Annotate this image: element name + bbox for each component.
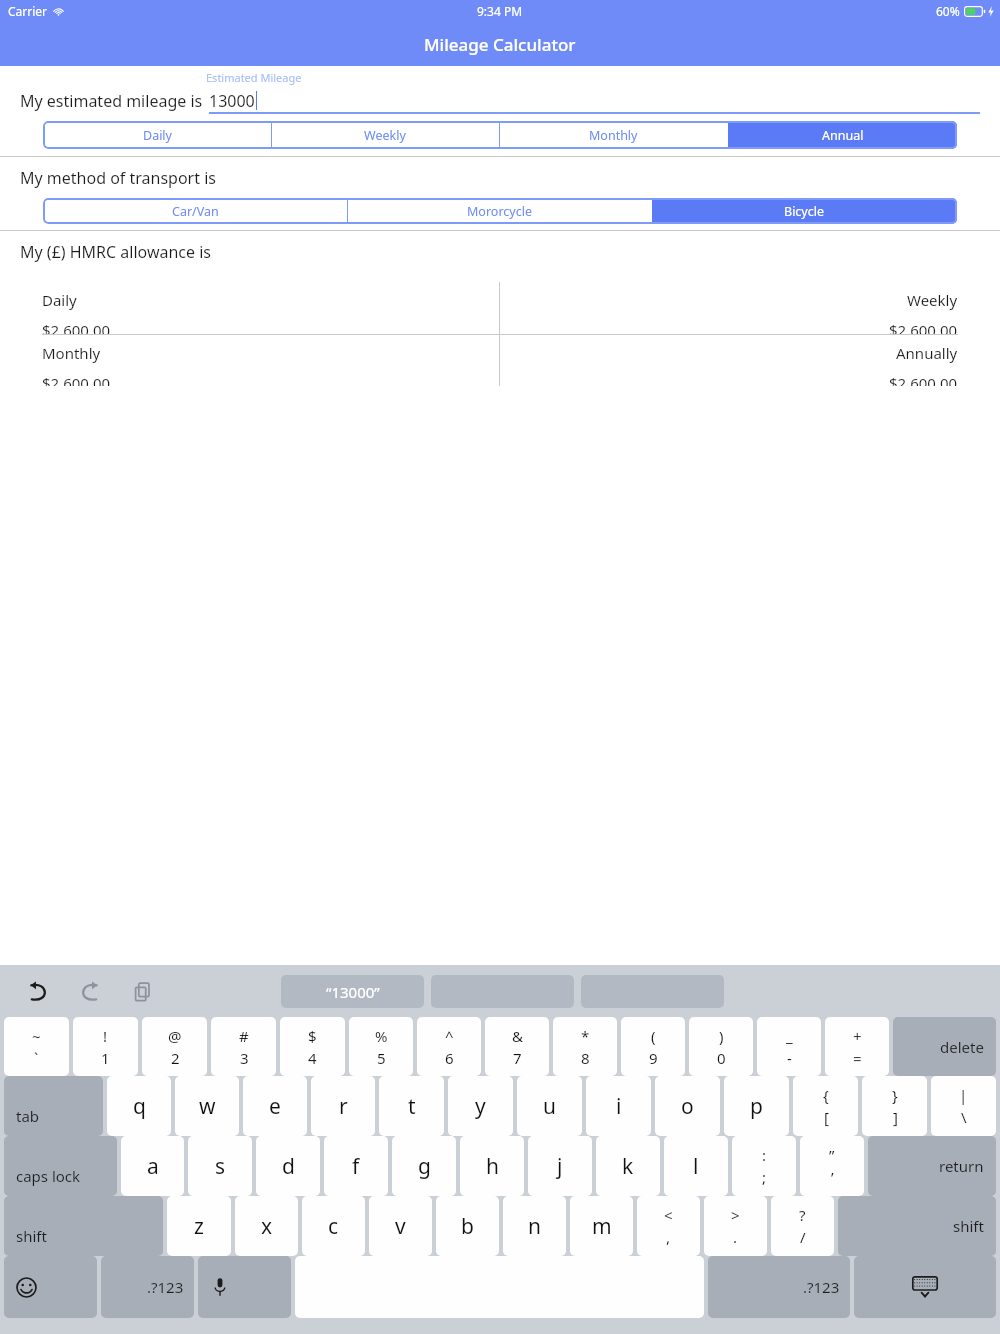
button[interactable]: Annual — [728, 121, 957, 149]
button[interactable]: h — [460, 1136, 524, 1196]
button[interactable]: .?123 — [101, 1256, 194, 1318]
button[interactable]: Monthly — [499, 121, 728, 149]
staticText: tab — [16, 1106, 40, 1126]
staticText: # — [239, 1026, 249, 1046]
button[interactable]: @ — [142, 1017, 207, 1076]
button[interactable]: } — [862, 1076, 927, 1136]
button[interactable]: z — [167, 1196, 231, 1256]
button[interactable]: Undo — [20, 973, 56, 1009]
button[interactable]: : — [732, 1136, 796, 1196]
staticText: shift — [953, 1216, 984, 1236]
staticText: q — [133, 1092, 146, 1121]
button[interactable]: Redo — [72, 973, 108, 1009]
staticText: Weekly — [907, 290, 958, 310]
staticText: 2 — [171, 1048, 180, 1068]
button[interactable]: r — [311, 1076, 375, 1136]
button[interactable]: ” — [800, 1136, 864, 1196]
button[interactable]: Paste — [124, 973, 160, 1009]
button[interactable]: i — [586, 1076, 651, 1136]
button[interactable]: Annually — [500, 335, 1000, 386]
button[interactable]: _ — [757, 1017, 821, 1076]
button[interactable]: m — [570, 1196, 633, 1256]
button[interactable]: f — [324, 1136, 388, 1196]
staticText: $ — [308, 1026, 317, 1046]
button[interactable]: v — [369, 1196, 432, 1256]
staticText: s — [215, 1152, 226, 1181]
button[interactable]: t — [379, 1076, 444, 1136]
button[interactable]: n — [503, 1196, 566, 1256]
button[interactable]: shift — [838, 1196, 996, 1256]
button[interactable]: u — [517, 1076, 582, 1136]
button[interactable]: Monthly — [0, 335, 500, 386]
staticText: \ — [961, 1107, 967, 1127]
button[interactable]: e — [243, 1076, 307, 1136]
button[interactable]: Daily — [43, 121, 271, 149]
button[interactable]: < — [637, 1196, 700, 1256]
staticText: ! — [103, 1026, 108, 1046]
button[interactable]: Mororcycle — [347, 198, 652, 224]
button[interactable]: “13000” — [281, 975, 424, 1008]
staticText: t — [408, 1092, 416, 1121]
button[interactable]: c — [302, 1196, 365, 1256]
button[interactable]: { — [793, 1076, 858, 1136]
button[interactable]: Weekly — [271, 121, 499, 149]
button[interactable]: # — [211, 1017, 276, 1076]
button[interactable]: k — [596, 1136, 660, 1196]
button[interactable]: * — [553, 1017, 617, 1076]
staticText: ^ — [445, 1026, 454, 1046]
staticText: $2,600.00 — [889, 373, 958, 386]
staticText: u — [543, 1092, 556, 1121]
button[interactable]: o — [655, 1076, 720, 1136]
button[interactable]: j — [528, 1136, 592, 1196]
staticText: ` — [34, 1048, 39, 1068]
button[interactable]: Weekly — [500, 282, 1000, 334]
button[interactable]: Emoji — [4, 1256, 97, 1318]
button[interactable]: $ — [280, 1017, 345, 1076]
button[interactable]: g — [392, 1136, 456, 1196]
button[interactable]: l — [664, 1136, 728, 1196]
button[interactable]: tab — [4, 1076, 103, 1136]
button[interactable]: ^ — [417, 1017, 481, 1076]
button[interactable]: ~ — [4, 1017, 69, 1076]
button[interactable]: Hide keyboard — [854, 1256, 996, 1318]
staticText: : — [762, 1145, 767, 1165]
button[interactable]: ! — [73, 1017, 138, 1076]
button[interactable]: a — [121, 1136, 184, 1196]
button[interactable]: ) — [689, 1017, 753, 1076]
button[interactable]: d — [256, 1136, 320, 1196]
button[interactable]: return — [868, 1136, 996, 1196]
staticText: i — [616, 1092, 622, 1121]
button[interactable]: + — [825, 1017, 889, 1076]
button[interactable]: Car/Van — [43, 198, 347, 224]
staticText: ” — [829, 1145, 835, 1165]
button[interactable]: caps lock — [4, 1136, 117, 1196]
button[interactable]: > — [704, 1196, 767, 1256]
staticText: caps lock — [16, 1166, 81, 1186]
button[interactable]: p — [724, 1076, 789, 1136]
staticText: j — [557, 1152, 563, 1181]
button[interactable]: s — [188, 1136, 252, 1196]
button[interactable]: q — [107, 1076, 171, 1136]
button[interactable]: % — [349, 1017, 413, 1076]
button[interactable]: delete — [893, 1017, 996, 1076]
button[interactable]: Dictation — [198, 1256, 291, 1318]
button[interactable]: ? — [771, 1196, 834, 1256]
button[interactable]: shift — [4, 1196, 163, 1256]
staticText: x — [261, 1212, 273, 1241]
button[interactable]: ( — [621, 1017, 685, 1076]
button[interactable]: w — [175, 1076, 239, 1136]
button[interactable]: | — [931, 1076, 996, 1136]
button[interactable]: Daily — [0, 282, 500, 334]
staticText: { — [823, 1085, 829, 1105]
button[interactable]: .?123 — [708, 1256, 850, 1318]
staticText: - — [787, 1048, 792, 1068]
button[interactable]: Bicycle — [652, 198, 957, 224]
button[interactable]: b — [436, 1196, 499, 1256]
staticText: > — [731, 1205, 740, 1225]
button[interactable]: & — [485, 1017, 549, 1076]
button[interactable]: x — [235, 1196, 298, 1256]
button[interactable]: y — [448, 1076, 513, 1136]
